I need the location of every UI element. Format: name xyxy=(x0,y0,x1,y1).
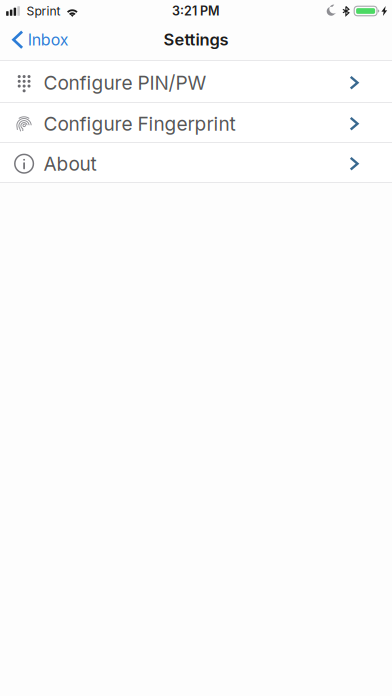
staticText: About xyxy=(43,152,96,175)
staticText: Settings xyxy=(163,29,228,49)
staticText: Configure PIN/PW xyxy=(43,71,206,94)
button[interactable]: Configure Fingerprint xyxy=(0,103,392,143)
button[interactable]: About xyxy=(0,143,392,183)
staticText: Sprint xyxy=(26,4,60,18)
staticText: Configure Fingerprint xyxy=(43,112,235,135)
button[interactable]: Inbox xyxy=(0,22,79,60)
staticText: Inbox xyxy=(28,30,69,49)
staticText: 3:21 PM xyxy=(172,3,220,19)
button[interactable]: Configure PIN/PW xyxy=(0,61,392,103)
